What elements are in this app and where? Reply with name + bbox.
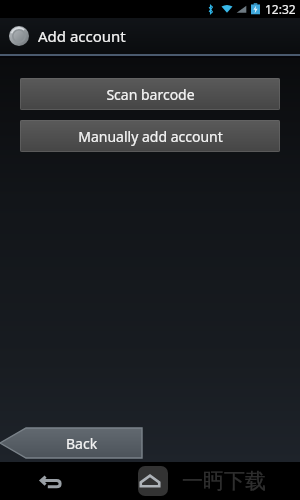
- staticText: Back: [66, 434, 98, 453]
- button[interactable]: Back: [0, 462, 100, 500]
- staticText: Scan barcode: [106, 85, 195, 104]
- staticText: Manually add account: [78, 127, 223, 146]
- button[interactable]: Manually add account: [20, 120, 280, 152]
- button[interactable]: Back: [0, 428, 142, 458]
- staticText: 12:32: [265, 1, 296, 17]
- button[interactable]: Scan barcode: [20, 78, 280, 110]
- staticText: 一眄下载: [182, 468, 266, 494]
- button[interactable]: Home: [100, 462, 200, 500]
- staticText: Add account: [38, 26, 126, 46]
